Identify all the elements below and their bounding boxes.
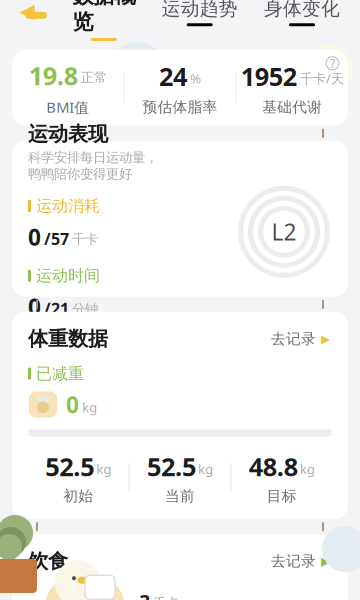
staticText: 体重数据 (28, 326, 108, 351)
staticText: 千卡 (72, 231, 98, 248)
staticText: 52.5 (45, 450, 94, 483)
staticText: 分钟 (72, 301, 98, 317)
staticText: kg (96, 460, 111, 478)
staticText: 目标 (267, 487, 297, 505)
staticText: 数据概览 (72, 0, 135, 35)
staticText: BMI值 (46, 97, 89, 117)
staticText: 48.8 (249, 450, 298, 483)
staticText: 运动时间 (36, 266, 100, 286)
staticText: 科学安排每日运动量，鸭鸭陪你变得更好 (28, 149, 158, 182)
staticText: 当前 (165, 487, 195, 505)
staticText: ▶ (321, 332, 330, 346)
staticText: 千卡/天 (300, 69, 344, 87)
staticText: 19.8 (29, 59, 78, 92)
staticText: 去记录 (271, 552, 316, 570)
staticText: 饮食 (28, 549, 68, 573)
staticText: 运动表现 (28, 122, 108, 146)
button[interactable]: 数据概览 (66, 0, 141, 32)
staticText: 运动消耗 (36, 196, 100, 216)
staticText: 预估体脂率 (142, 98, 217, 116)
staticText: /57 (44, 228, 69, 249)
staticText: 0 (28, 292, 41, 322)
staticText: 身体变化 (264, 0, 340, 20)
staticText: 0 (66, 389, 79, 420)
button[interactable]: 去记录 (269, 326, 332, 352)
staticText: kg (82, 398, 97, 416)
staticText: ? (330, 55, 335, 71)
staticText: % (190, 69, 201, 87)
staticText: ? (140, 588, 150, 600)
staticText: 运动趋势 (162, 0, 238, 20)
button[interactable]: 运动趋势 (156, 0, 244, 32)
staticText: 基础代谢 (262, 98, 322, 116)
button[interactable]: 身体变化 (258, 0, 346, 32)
staticText: L2 (271, 217, 296, 247)
staticText: /21 (44, 298, 69, 319)
staticText: 52.5 (147, 450, 196, 483)
staticText: 1952 (241, 59, 297, 93)
staticText: 初始 (63, 487, 93, 505)
button[interactable]: 说明 (326, 57, 339, 70)
button[interactable]: 去记录 (269, 548, 332, 574)
staticText: kg (300, 460, 315, 478)
staticText: kg (198, 460, 213, 478)
staticText: 正常 (81, 69, 107, 86)
staticText: 24 (159, 59, 187, 93)
staticText: 千卡 (153, 595, 179, 600)
staticText: 已减重 (36, 364, 84, 383)
staticText: 去记录 (271, 330, 316, 348)
staticText: 0 (28, 222, 41, 252)
staticText: ▶ (321, 554, 330, 568)
button[interactable]: 返回 (14, 0, 52, 26)
staticText: ◀ (19, 0, 34, 22)
